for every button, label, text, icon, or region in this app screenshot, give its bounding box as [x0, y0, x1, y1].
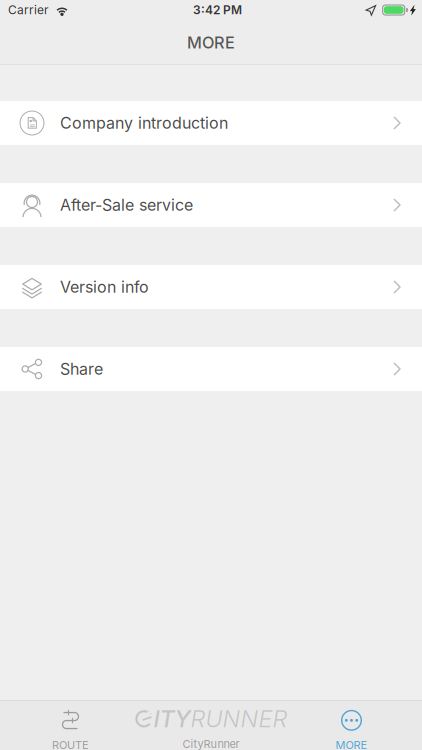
staticText: Carrier: [8, 3, 49, 17]
button[interactable]: ITY: [141, 700, 281, 750]
button[interactable]: After-Sale service: [0, 183, 422, 227]
staticText: Company introduction: [60, 113, 228, 133]
staticText: CityRunner: [182, 737, 239, 750]
button[interactable]: ROUTE: [0, 700, 141, 750]
staticText: ROUTE: [52, 738, 89, 750]
staticText: After-Sale service: [60, 195, 193, 215]
button[interactable]: Share: [0, 347, 422, 391]
button[interactable]: MORE: [281, 700, 422, 750]
staticText: MORE: [187, 33, 235, 52]
staticText: RUNNER: [190, 705, 287, 733]
button[interactable]: Company introduction: [0, 101, 422, 145]
staticText: Share: [60, 359, 103, 379]
staticText: 3:42 PM: [193, 3, 242, 17]
staticText: ITY: [153, 705, 190, 733]
button[interactable]: Version info: [0, 265, 422, 309]
staticText: MORE: [335, 738, 367, 750]
staticText: Version info: [60, 277, 149, 297]
